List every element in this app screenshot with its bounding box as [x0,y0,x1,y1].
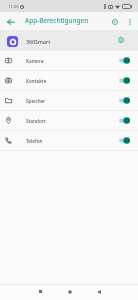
button[interactable]: Standort [0,111,138,130]
button[interactable]: More options [124,12,138,30]
button[interactable]: Toggle permission [119,134,130,147]
button[interactable]: Help [109,12,124,30]
staticText: Standort [26,118,46,124]
button[interactable]: Home [55,285,84,300]
button[interactable]: App info [122,30,138,50]
button[interactable]: Toggle permission [119,94,130,107]
button[interactable]: Toggle permission [119,74,130,87]
button[interactable]: Telefon [0,131,138,150]
button[interactable]: Kamera [0,51,138,70]
staticText: Speicher [26,98,46,104]
button[interactable]: Toggle permission [119,54,130,67]
staticText: Kontakte [26,78,47,84]
button[interactable]: Speicher [0,91,138,110]
button[interactable]: Back [84,285,113,300]
button[interactable]: Recent apps [26,285,55,300]
button[interactable]: Toggle permission [119,114,130,127]
staticText: 360Smart [26,38,51,45]
staticText: Kamera [26,58,44,64]
staticText: App-Berechtigungen [25,16,89,25]
button[interactable]: Kontakte [0,71,138,90]
button[interactable]: Back [0,12,21,30]
staticText: Telefon [26,138,43,144]
staticText: 11:26 [8,4,19,10]
button[interactable]: 360Smart [0,30,138,50]
